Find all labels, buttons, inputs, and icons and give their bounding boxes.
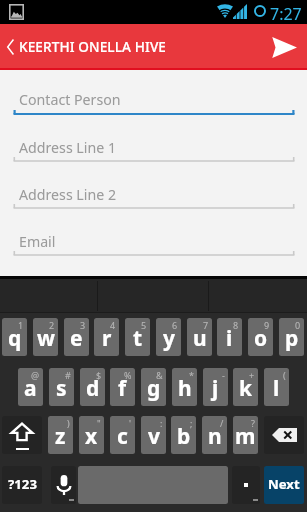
staticText: $ [96,369,102,381]
button[interactable]: ?123 [2,466,42,504]
button[interactable]: j [203,368,228,406]
staticText: 0 [295,319,301,331]
staticText: i [226,324,233,353]
staticText: 9 [264,319,270,331]
button[interactable]: Email [0,227,307,255]
staticText: o [254,324,268,353]
staticText: ?123 [8,475,37,493]
staticText: y [163,324,175,353]
staticText: 1 [18,319,24,331]
staticText: ? [251,417,255,429]
staticText: @ [31,369,40,381]
staticText: f [118,374,127,403]
staticText: " [97,417,101,429]
staticText: KEERTHI ONELLA HIVE [19,37,167,56]
button[interactable]: p [279,318,304,356]
staticText: a [24,374,37,403]
staticText: r [102,324,112,353]
button[interactable]: Address Line 2 [0,180,307,208]
button[interactable]: Next [264,466,304,504]
staticText: x [85,422,98,451]
staticText: ) [67,417,70,429]
button[interactable]: Shift [2,416,42,454]
staticText: p [285,324,299,353]
button[interactable]: f [110,368,135,406]
staticText: 2 [49,319,55,331]
staticText: c [117,422,128,451]
staticText: 7 [203,319,209,331]
button[interactable]: h [172,368,197,406]
button[interactable]: q [2,318,27,356]
staticText: 8 [233,319,239,331]
staticText: 7:27 [270,3,302,25]
button[interactable]: u [187,318,212,356]
button[interactable]: a [18,368,43,406]
button[interactable]: x [79,416,104,454]
button[interactable]: i [217,318,242,356]
button[interactable]: e [64,318,89,356]
staticText: Address Line 1 [19,138,117,157]
button[interactable]: y [156,318,181,356]
button[interactable]: m [233,416,258,454]
staticText: z [55,422,66,451]
staticText: s [56,374,67,403]
staticText: ' [129,417,132,429]
staticText: w [37,324,55,353]
staticText: 5 [141,319,147,331]
button[interactable]: z [48,416,73,454]
button[interactable]: Back [0,24,20,70]
button[interactable]: v [141,416,166,454]
staticText: k [239,374,253,403]
button[interactable] [232,466,260,504]
button[interactable]: r [94,318,119,356]
staticText: h [178,374,192,403]
staticText: e [70,324,83,353]
staticText: q [8,324,22,353]
button[interactable]: d [80,368,105,406]
button[interactable]: Voice input [51,466,76,504]
button[interactable]: n [202,416,227,454]
staticText: 6 [172,319,178,331]
button[interactable]: c [110,416,135,454]
staticText: Contact Person [19,90,121,109]
staticText: & [156,369,163,381]
staticText: m [235,422,256,451]
staticText: v [148,422,160,451]
staticText: j [212,374,219,403]
staticText: 3 [80,319,86,331]
staticText: ; [190,417,193,429]
button[interactable]: Address Line 1 [0,133,307,161]
staticText: # [65,369,71,381]
staticText: g [147,374,161,403]
staticText: ( [283,369,286,381]
staticText: u [193,324,207,353]
button[interactable]: Contact Person [0,85,307,113]
button[interactable]: k [233,368,258,406]
staticText: Email [19,232,56,251]
button[interactable]: t [125,318,150,356]
button[interactable]: o [248,318,273,356]
staticText: t [133,324,143,353]
staticText: n [208,422,222,451]
staticText: Next [268,475,300,493]
staticText: + [249,369,255,381]
staticText: 4 [110,319,116,331]
button[interactable]: g [141,368,166,406]
staticText: Address Line 2 [19,185,117,204]
staticText: : [160,417,163,429]
button[interactable]: w [33,318,58,356]
button[interactable]: Send [263,24,307,70]
staticText: d [86,374,100,403]
button[interactable]: Backspace [264,416,304,454]
button[interactable]: b [171,416,196,454]
button[interactable]: s [49,368,74,406]
button[interactable]: l [264,368,289,406]
staticText: l [273,374,280,403]
staticText: * [189,369,194,381]
staticText: b [177,422,191,451]
staticText: - [222,369,225,381]
